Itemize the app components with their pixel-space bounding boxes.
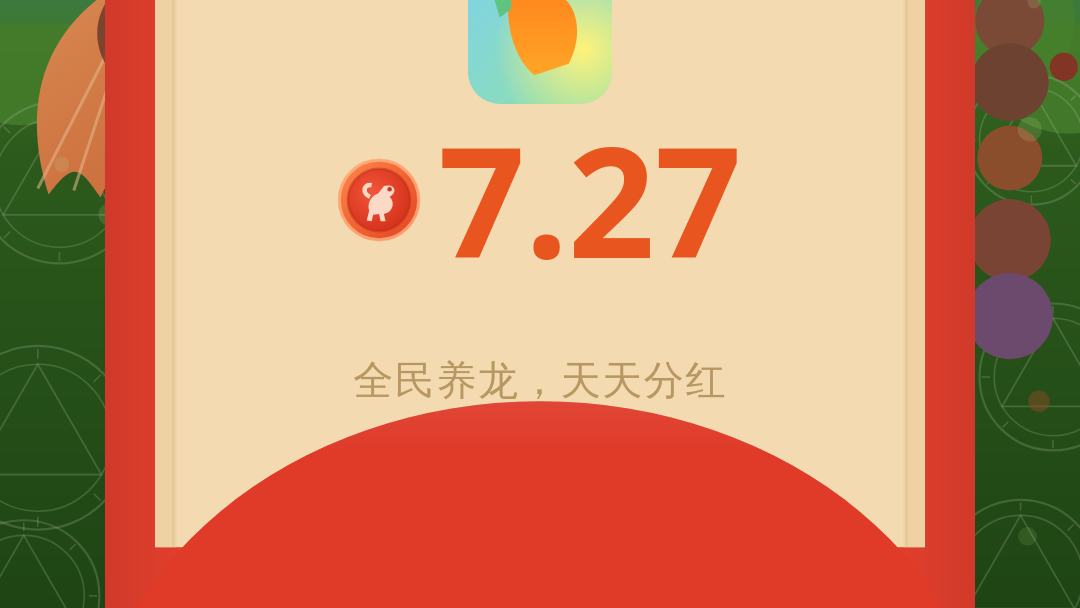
- staticText: 全民养龙，天天分红: [353, 355, 727, 405]
- staticText: 7.27: [438, 96, 742, 303]
- button[interactable]: 7.27: [338, 96, 742, 303]
- button[interactable]: App icon: [468, 0, 612, 104]
